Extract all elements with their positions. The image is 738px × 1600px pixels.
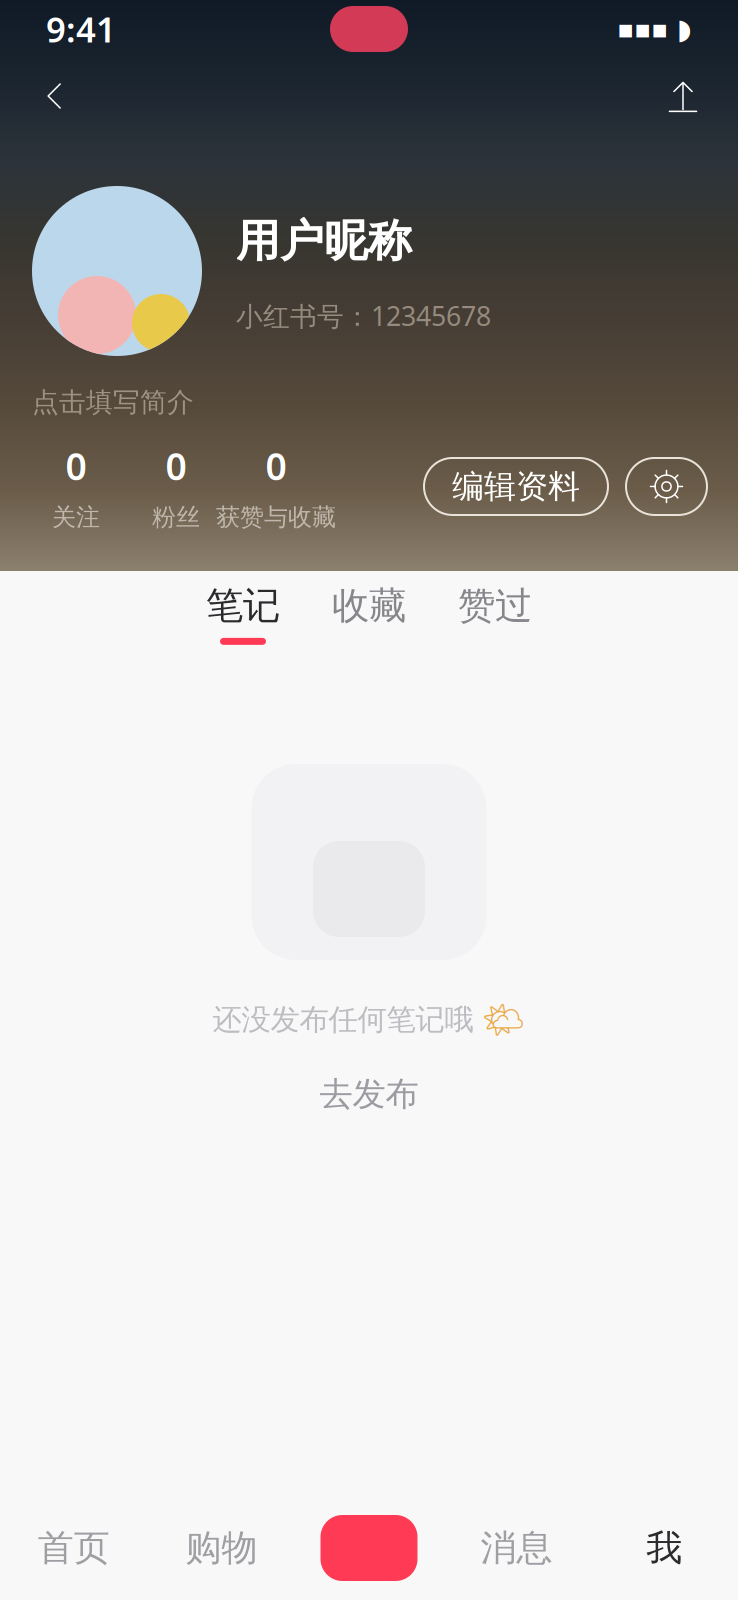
staticText: 还没发布任何笔记哦 (212, 1002, 473, 1038)
staticText: 🌤 (481, 1000, 525, 1040)
button[interactable]: Create post (295, 1515, 443, 1581)
staticText: 0 (265, 441, 286, 490)
staticText: 笔记 (206, 583, 280, 629)
staticText: 编辑资料 (452, 467, 580, 506)
button[interactable]: 0 (126, 441, 226, 532)
staticText: 获赞与收藏 (216, 502, 336, 532)
button[interactable]: 消息 (443, 1526, 590, 1570)
button[interactable]: Profile photo (32, 186, 202, 356)
staticText: 用户昵称 (236, 214, 412, 268)
staticText: 收藏 (332, 583, 406, 629)
staticText: 首页 (38, 1526, 110, 1570)
staticText: 0 (65, 441, 86, 490)
button[interactable]: 收藏 (306, 571, 432, 667)
staticText: ◗ (677, 13, 692, 45)
button[interactable]: Share profile (648, 58, 718, 134)
staticText: 购物 (185, 1526, 257, 1570)
staticText: 去发布 (319, 1074, 418, 1114)
staticText: ▪▪▪ (617, 15, 668, 43)
staticText: 点击填写简介 (32, 386, 194, 419)
button[interactable]: 0 (226, 441, 326, 532)
button[interactable]: 笔记 (180, 571, 306, 667)
staticText: 0 (165, 441, 186, 490)
staticText: 消息 (481, 1526, 553, 1570)
button[interactable]: 赞过 (432, 571, 558, 667)
button[interactable]: Settings (626, 458, 707, 515)
staticText: 赞过 (458, 583, 532, 629)
staticText: 我 (646, 1526, 682, 1570)
staticText: 粉丝 (152, 502, 200, 532)
staticText: 关注 (52, 502, 100, 532)
button[interactable]: 去发布 (319, 1074, 418, 1114)
staticText: 小红书号：12345678 (236, 298, 491, 333)
button[interactable]: 我 (590, 1526, 738, 1570)
button[interactable]: 编辑资料 (424, 458, 608, 515)
staticText: 9:41 (46, 6, 116, 52)
button[interactable]: 0 (26, 441, 126, 532)
button[interactable]: Back (20, 58, 90, 134)
button[interactable]: 购物 (148, 1526, 295, 1570)
button[interactable]: 首页 (0, 1526, 148, 1570)
